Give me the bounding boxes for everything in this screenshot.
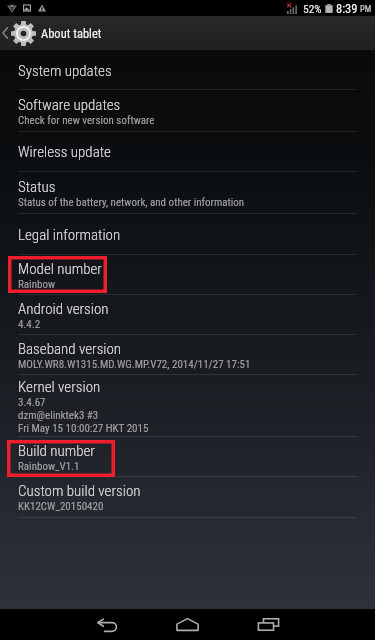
button[interactable]: Software updates	[0, 90, 375, 132]
button[interactable]: Back	[68, 609, 147, 640]
button[interactable]: Android version	[0, 295, 375, 335]
staticText: Rainbow_V1.1	[18, 460, 80, 473]
staticText: Legal information	[18, 226, 121, 244]
button[interactable]: System updates	[0, 52, 375, 90]
staticText: Status of the battery, network, and othe…	[18, 196, 245, 209]
staticText: Baseband version	[18, 340, 122, 358]
button[interactable]: Build number	[0, 437, 375, 477]
staticText: 4.4.2	[18, 318, 41, 331]
staticText: Status	[18, 178, 56, 196]
staticText: About tablet	[41, 26, 102, 41]
staticText: Kernel version	[18, 378, 101, 396]
button[interactable]: About tablet, navigate up	[0, 16, 375, 50]
button[interactable]: Home	[148, 609, 227, 640]
staticText: Check for new version software	[18, 114, 155, 127]
staticText: Model number	[18, 260, 102, 278]
button[interactable]: Wireless update	[0, 132, 375, 172]
button[interactable]: Status	[0, 172, 375, 214]
button[interactable]: Recent apps	[229, 609, 308, 640]
staticText: PM	[360, 4, 372, 14]
button[interactable]: Baseband version	[0, 335, 375, 375]
staticText: Wireless update	[18, 143, 111, 161]
button[interactable]: Model number	[0, 255, 375, 295]
staticText: KK12CW_20150420	[18, 500, 104, 513]
staticText: 8:39	[336, 1, 358, 16]
staticText: System updates	[18, 62, 112, 80]
staticText: Android version	[18, 300, 109, 318]
button[interactable]: Kernel version	[0, 375, 375, 437]
button[interactable]: Custom build version	[0, 477, 375, 518]
staticText: Fri May 15 10:00:27 HKT 2015	[18, 422, 149, 435]
staticText: dzm@elinktek3 #3	[18, 409, 99, 422]
staticText: 3.4.67	[18, 396, 46, 409]
staticText: Software updates	[18, 96, 121, 114]
staticText: 52%	[303, 2, 322, 15]
staticText: Rainbow	[18, 278, 56, 291]
staticText: Build number	[18, 442, 95, 460]
staticText: Custom build version	[18, 482, 141, 500]
staticText: MOLY.WR8.W1315.MD.WG.MP.V72, 2014/11/27 …	[18, 358, 251, 371]
button[interactable]: Legal information	[0, 214, 375, 255]
